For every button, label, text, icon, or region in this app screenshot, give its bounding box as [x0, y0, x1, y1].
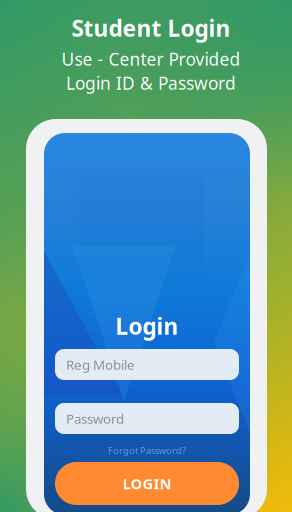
staticText: Student Login: [71, 13, 230, 43]
staticText: Use - Center Provided: [61, 47, 240, 70]
staticText: Reg Mobile: [66, 356, 135, 373]
staticText: Login ID & Password: [66, 71, 236, 94]
button[interactable]: LOGIN: [55, 462, 239, 505]
staticText: Password: [66, 410, 124, 427]
staticText: Forgot Password?: [108, 444, 186, 457]
button[interactable]: Forgot Password?: [55, 446, 239, 455]
staticText: Login: [115, 311, 178, 341]
staticText: LOGIN: [122, 474, 171, 493]
